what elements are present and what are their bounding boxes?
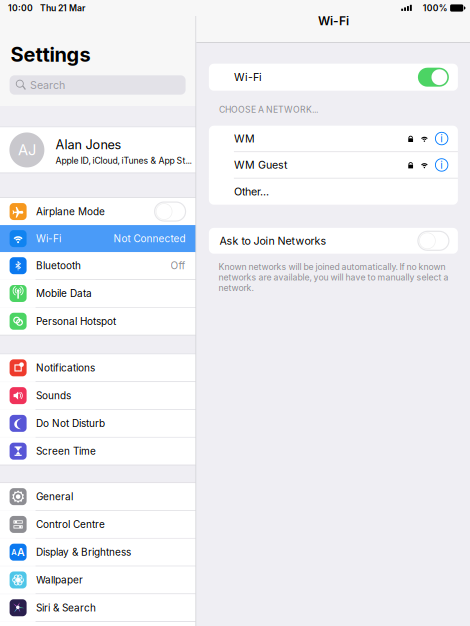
staticText: Apple ID, iCloud, iTunes & App St... <box>55 155 191 166</box>
button[interactable]: Bluetooth <box>0 252 196 279</box>
staticText: Control Centre <box>36 518 105 530</box>
staticText: Wi-Fi <box>36 233 61 245</box>
button[interactable]: Wallpaper <box>0 566 196 593</box>
staticText: i <box>440 132 443 145</box>
button[interactable]: Search <box>10 75 186 95</box>
button[interactable]: WM Guest <box>209 152 458 178</box>
staticText: Personal Hotspot <box>36 315 116 327</box>
button[interactable]: Screen Time <box>0 438 196 465</box>
staticText: i <box>440 159 443 171</box>
staticText: A <box>11 548 16 557</box>
staticText: Alan Jones <box>55 137 121 152</box>
staticText: Wi-Fi <box>318 14 349 28</box>
button[interactable]: Airplane Mode <box>0 198 196 225</box>
staticText: Not Connected <box>114 233 186 245</box>
staticText: Bluetooth <box>36 260 81 272</box>
staticText: Siri & Search <box>36 602 96 614</box>
button[interactable]: General <box>0 483 196 510</box>
staticText: Search <box>30 78 65 91</box>
button[interactable]: Siri & Search <box>0 594 196 621</box>
staticText: Sounds <box>36 390 71 402</box>
staticText: Display & Brightness <box>36 546 131 558</box>
button[interactable]: Control Centre <box>0 511 196 538</box>
staticText: 10:00 <box>8 3 33 13</box>
staticText: Airplane Mode <box>36 205 105 218</box>
staticText: Screen Time <box>36 445 96 457</box>
button[interactable]: A <box>0 539 196 566</box>
button[interactable]: Wi-Fi <box>0 225 196 252</box>
button[interactable]: Notifications <box>0 354 196 381</box>
staticText: CHOOSE A NETWORK... <box>219 104 318 115</box>
staticText: A <box>17 546 25 559</box>
staticText: Known networks will be joined automatica… <box>218 262 448 293</box>
staticText: Wi-Fi <box>234 71 262 84</box>
button[interactable]: WM <box>209 126 458 151</box>
button[interactable]: Personal Hotspot <box>0 308 196 335</box>
staticText: Thu 21 Mar <box>40 3 85 13</box>
staticText: Mobile Data <box>36 287 92 299</box>
staticText: General <box>36 491 73 503</box>
staticText: Ask to Join Networks <box>219 234 326 247</box>
staticText: 100% <box>423 3 448 13</box>
staticText: Settings <box>11 42 91 67</box>
staticText: Wallpaper <box>36 574 83 586</box>
staticText: Notifications <box>36 362 95 374</box>
button[interactable]: Do Not Disturb <box>0 410 196 437</box>
button[interactable]: Other... <box>209 178 458 205</box>
staticText: Other... <box>234 185 269 198</box>
button[interactable]: Mobile Data <box>0 280 196 307</box>
button[interactable]: Sounds <box>0 382 196 409</box>
staticText: WM Guest <box>234 158 287 171</box>
button[interactable]: AJ <box>0 127 196 173</box>
staticText: Do Not Disturb <box>36 417 105 429</box>
staticText: Off <box>171 260 186 272</box>
staticText: WM <box>234 132 255 145</box>
staticText: AJ <box>18 141 36 159</box>
